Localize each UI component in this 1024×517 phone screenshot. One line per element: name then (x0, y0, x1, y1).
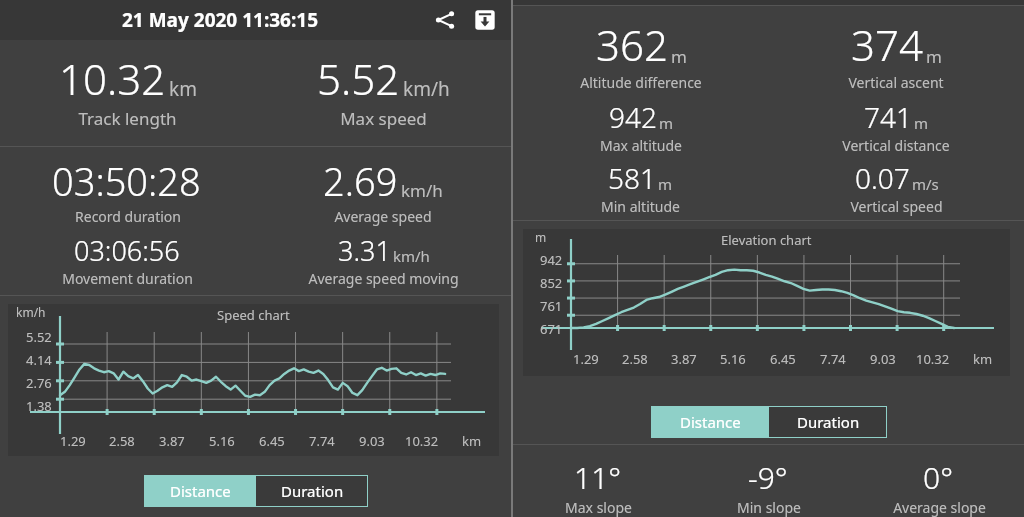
button[interactable]: Share (425, 0, 465, 40)
staticText: Distance (680, 412, 741, 432)
staticText: 21 May 2020 11:36:15 (122, 7, 319, 33)
staticText: 9.03 (870, 350, 896, 368)
staticText: km/h (401, 179, 443, 202)
staticText: 741 (864, 98, 912, 136)
staticText: 4.14 (26, 351, 52, 369)
staticText: 6.45 (259, 432, 285, 450)
staticText: 5.52 (26, 328, 52, 346)
staticText: m (926, 45, 942, 68)
staticText: km (973, 350, 993, 368)
staticText: m (535, 229, 547, 245)
button[interactable]: Duration (256, 475, 368, 507)
staticText: Track length (78, 107, 177, 130)
button[interactable]: Distance (144, 475, 256, 507)
staticText: 942 (540, 251, 563, 269)
staticText: 374 (851, 16, 923, 73)
staticText: Min slope (737, 498, 801, 517)
staticText: Vertical ascent (848, 73, 944, 92)
staticText: Vertical distance (842, 136, 950, 155)
staticText: Speed chart (217, 306, 290, 324)
staticText: 9.03 (359, 432, 385, 450)
staticText: 5.16 (720, 350, 746, 368)
staticText: km (169, 76, 197, 102)
staticText: 2.69 (323, 155, 398, 207)
staticText: 10.32 (916, 350, 950, 368)
button[interactable]: Export (465, 0, 505, 40)
staticText: Record duration (75, 207, 181, 226)
staticText: 5.16 (209, 432, 235, 450)
staticText: Max slope (565, 498, 632, 517)
staticText: Average speed (334, 207, 432, 226)
staticText: m/s (912, 174, 939, 194)
staticText: m (671, 45, 687, 68)
staticText: Elevation chart (721, 231, 812, 249)
staticText: 03:06:56 (74, 232, 180, 269)
staticText: Duration (797, 412, 860, 432)
staticText: Movement duration (62, 269, 193, 288)
staticText: 362 (596, 16, 668, 73)
staticText: Average slope (893, 498, 986, 517)
staticText: 6.45 (770, 350, 796, 368)
staticText: 2.58 (109, 432, 135, 450)
staticText: 0.07 (855, 159, 910, 197)
staticText: Duration (281, 481, 344, 501)
staticText: km/h (393, 246, 430, 266)
staticText: 852 (540, 274, 563, 292)
staticText: 942 (609, 98, 657, 136)
staticText: 5.52 (317, 50, 400, 107)
staticText: 1.29 (573, 350, 599, 368)
staticText: 10.32 (59, 50, 166, 107)
staticText: 3.87 (159, 432, 185, 450)
staticText: Min altitude (601, 197, 680, 216)
staticText: 03:50:28 (52, 155, 201, 207)
staticText: 3.31 (338, 232, 391, 269)
staticText: km/h (403, 76, 450, 102)
button[interactable]: Duration (769, 406, 887, 438)
staticText: 10.32 (405, 432, 439, 450)
staticText: m (914, 113, 929, 133)
staticText: -9° (748, 457, 788, 498)
staticText: km/h (16, 304, 46, 320)
staticText: 1.29 (60, 432, 86, 450)
staticText: 581 (608, 159, 656, 197)
staticText: 671 (540, 320, 563, 338)
staticText: Vertical speed (850, 197, 943, 216)
staticText: 3.87 (671, 350, 697, 368)
staticText: 1.38 (26, 397, 52, 415)
staticText: Average speed moving (308, 269, 459, 288)
staticText: 2.58 (622, 350, 648, 368)
staticText: 2.76 (26, 374, 52, 392)
staticText: Distance (170, 481, 231, 501)
button[interactable]: Distance (651, 406, 769, 438)
staticText: m (659, 113, 674, 133)
staticText: Altitude difference (580, 73, 702, 92)
staticText: 0° (923, 457, 953, 498)
staticText: Max altitude (600, 136, 682, 155)
staticText: 7.74 (309, 432, 335, 450)
staticText: m (658, 174, 673, 194)
staticText: Max speed (340, 107, 427, 130)
staticText: km (462, 432, 482, 450)
staticText: 11° (574, 457, 622, 498)
staticText: 761 (540, 297, 563, 315)
staticText: 7.74 (820, 350, 846, 368)
